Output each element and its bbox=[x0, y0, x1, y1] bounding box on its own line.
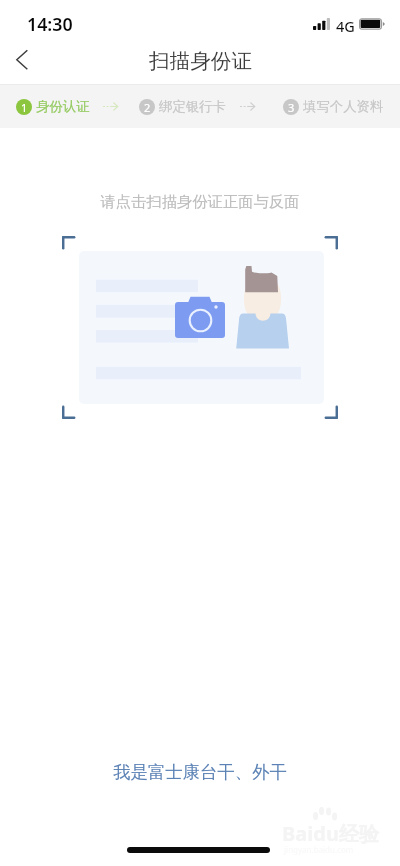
staticText: 请点击扫描身份证正面与反面 bbox=[0, 192, 400, 211]
button[interactable]: 3 bbox=[283, 85, 384, 128]
staticText: 填写个人资料 bbox=[303, 98, 384, 115]
staticText: 扫描身份证 bbox=[149, 48, 252, 74]
staticText: 身份认证 bbox=[36, 98, 90, 115]
button[interactable]: Back bbox=[0, 44, 44, 84]
button[interactable]: 我是富士康台干、外干 bbox=[0, 760, 400, 784]
staticText: 2 bbox=[144, 100, 151, 115]
button[interactable]: Scan ID card front and back bbox=[62, 236, 338, 419]
staticText: 3 bbox=[288, 100, 295, 115]
staticText: 我是富士康台干、外干 bbox=[113, 761, 287, 783]
staticText: 4G bbox=[336, 16, 355, 36]
button[interactable]: 1 bbox=[16, 85, 90, 128]
staticText: 14:30 bbox=[27, 12, 73, 36]
staticText: Baidu经验 bbox=[282, 820, 379, 847]
staticText: 绑定银行卡 bbox=[159, 98, 226, 115]
button[interactable]: 2 bbox=[139, 85, 226, 128]
staticText: 1 bbox=[21, 100, 28, 115]
